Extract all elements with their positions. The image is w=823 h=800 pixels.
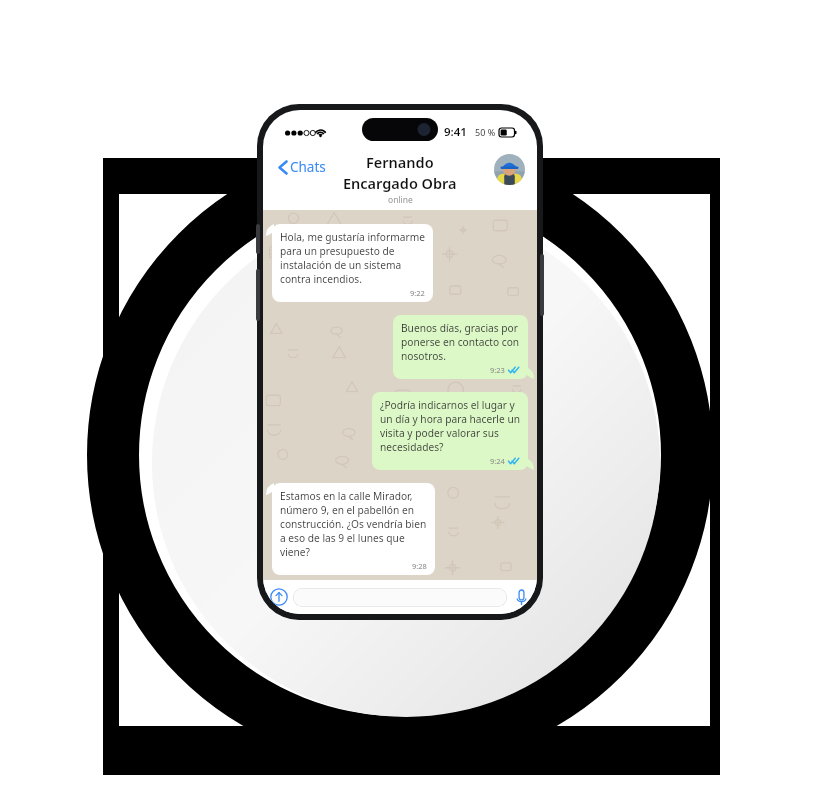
staticText: 9:41 [444, 124, 467, 140]
staticText: Encargado Obra [343, 173, 457, 193]
button[interactable]: Chats [275, 156, 329, 178]
staticText: 50 % [475, 126, 496, 138]
staticText: un día y hora para hacerle un [380, 412, 520, 426]
staticText: visita y poder valorar sus [380, 426, 499, 440]
staticText: 9:24 [490, 456, 505, 466]
staticText: Buenos días, gracias por [401, 321, 518, 335]
staticText: Estamos en la calle Mirador, [280, 489, 413, 503]
staticText: nosotros. [401, 349, 446, 363]
button[interactable]: Contact profile photo [494, 154, 525, 185]
staticText: Hola, me gustaría informarme [280, 230, 425, 244]
staticText: contra incendios. [280, 272, 362, 286]
button[interactable]: Hola, me gustaría informarme [272, 224, 433, 302]
staticText: número 9, en el pabellón en [280, 503, 414, 517]
button[interactable] [293, 588, 507, 607]
staticText: ¿Podría indicarnos el lugar y [380, 398, 515, 412]
button[interactable]: Buenos días, gracias por [393, 315, 528, 379]
button[interactable]: Record voice message [511, 587, 531, 607]
staticText: Chats [290, 158, 326, 176]
staticText: necesidades? [380, 440, 444, 454]
staticText: Fernando [366, 152, 434, 172]
staticText: 9:28 [412, 561, 427, 571]
staticText: para un presupuesto de [280, 244, 395, 258]
staticText: online [388, 194, 413, 206]
staticText: a eso de las 9 el lunes que [280, 531, 405, 545]
staticText: 9:23 [490, 365, 505, 375]
staticText: 9:22 [410, 288, 425, 298]
button[interactable]: Estamos en la calle Mirador, [272, 483, 435, 575]
staticText: instalación de un sistema [280, 258, 402, 272]
staticText: construcción. ¿Os vendría bien [280, 517, 427, 531]
button[interactable]: ¿Podría indicarnos el lugar y [372, 392, 528, 470]
button[interactable]: Attach [269, 587, 289, 607]
staticText: viene? [280, 545, 311, 559]
staticText: ponerse en contacto con [401, 335, 520, 349]
